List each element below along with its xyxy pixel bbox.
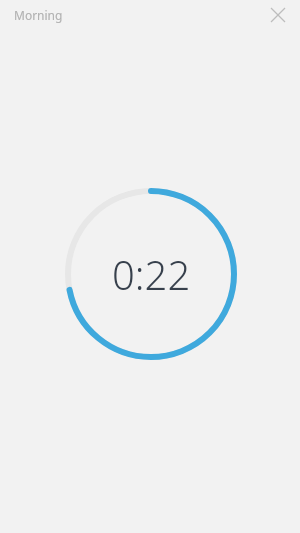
button[interactable]: 0:22 (63, 186, 239, 362)
staticText: 0:22 (112, 247, 191, 301)
button[interactable]: Close (264, 1, 292, 29)
button[interactable]: Morning (6, 2, 96, 28)
staticText: Morning (14, 7, 63, 23)
